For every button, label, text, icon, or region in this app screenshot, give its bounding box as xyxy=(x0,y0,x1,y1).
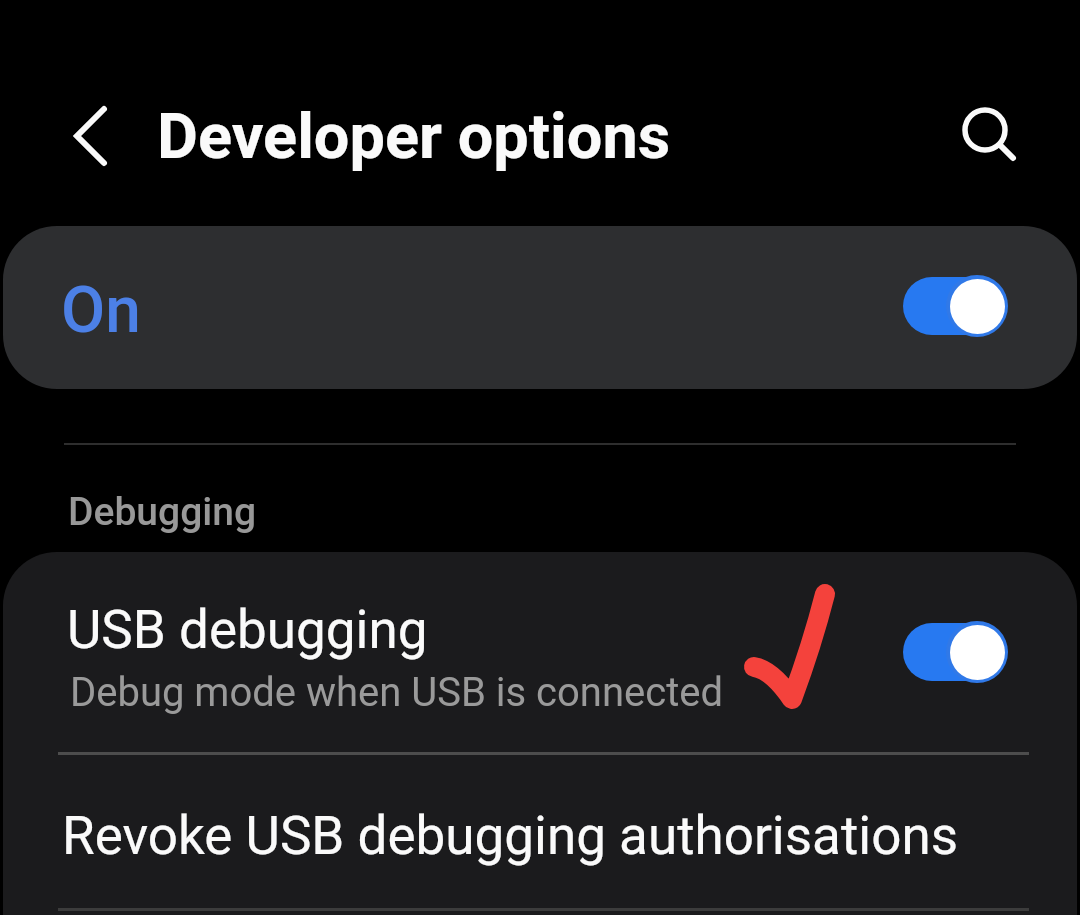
staticText: Debug mode when USB is connected xyxy=(70,669,724,716)
staticText: Developer options xyxy=(157,100,671,174)
button[interactable] xyxy=(55,105,125,169)
staticText: On xyxy=(61,273,141,348)
staticText: Debugging xyxy=(68,489,257,535)
button[interactable]: On xyxy=(3,226,1077,389)
staticText: USB debugging xyxy=(67,599,428,661)
button[interactable] xyxy=(950,98,1030,178)
staticText: Revoke USB debugging authorisations xyxy=(62,805,959,867)
button[interactable]: USB debugging xyxy=(3,552,1077,752)
button[interactable] xyxy=(903,277,1006,335)
button[interactable]: Revoke USB debugging authorisations xyxy=(3,757,1077,907)
button[interactable] xyxy=(903,623,1006,681)
